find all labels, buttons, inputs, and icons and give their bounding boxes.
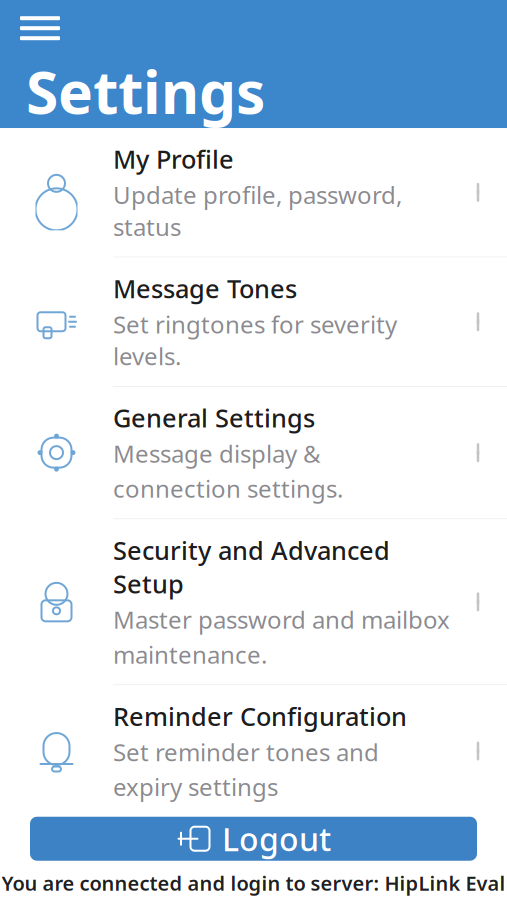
staticText: maintenance. <box>113 638 267 670</box>
staticText: Set ringtones for severity levels. <box>113 308 397 372</box>
staticText: Set reminder tones and <box>113 736 379 768</box>
staticText: Settings <box>26 52 265 130</box>
staticText: Logout <box>222 817 331 860</box>
staticText: Reminder Configuration <box>113 699 407 733</box>
staticText: Master password and mailbox <box>113 604 450 635</box>
staticText: Message display & <box>113 438 321 469</box>
staticText: expiry settings <box>113 771 278 803</box>
button[interactable]: Security and Advanced Setup <box>0 519 507 685</box>
button[interactable]: Message Tones <box>0 257 507 387</box>
button[interactable]: General Settings <box>0 387 507 519</box>
staticText: Security and Advanced Setup <box>113 533 390 601</box>
staticText: Message Tones <box>113 271 297 305</box>
staticText: You are connected and login to server: H… <box>1 870 505 896</box>
staticText: Update profile, password, status <box>113 179 402 242</box>
staticText: My Profile <box>113 142 234 176</box>
button[interactable]: Logout <box>30 817 477 861</box>
button[interactable]: Reminder Configuration <box>0 685 507 817</box>
staticText: connection settings. <box>113 472 343 504</box>
button[interactable]: Menu <box>14 6 66 50</box>
button[interactable]: My Profile <box>0 128 507 258</box>
staticText: General Settings <box>113 401 315 434</box>
